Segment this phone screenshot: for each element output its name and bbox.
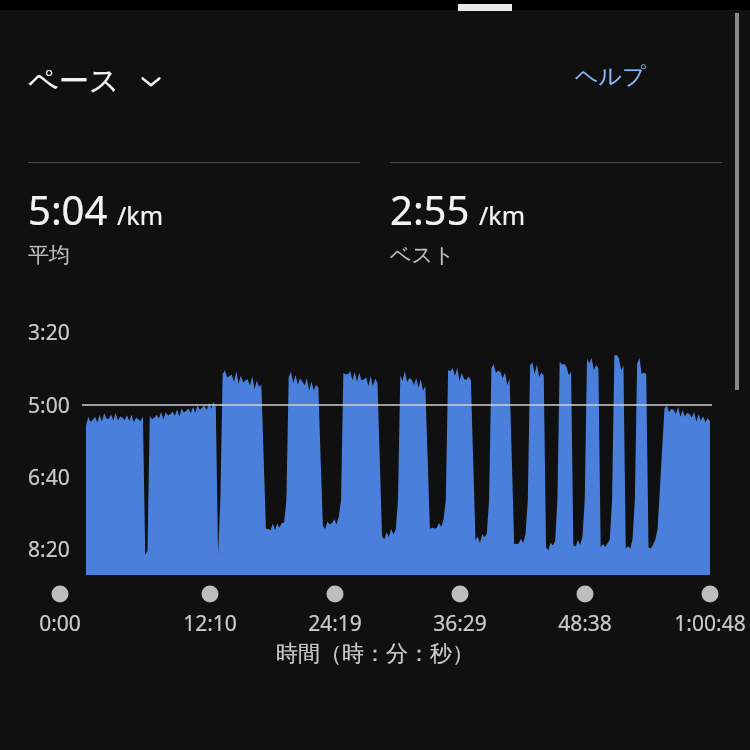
button[interactable]: ヘルプ [573, 62, 648, 91]
staticText: ペース [28, 62, 120, 100]
staticText: 5:04 [28, 182, 108, 236]
staticText: 時間（時：分：秒） [276, 640, 474, 668]
staticText: 平均 [28, 242, 70, 268]
staticText: ベスト [390, 242, 455, 268]
staticText: 12:10 [183, 609, 237, 638]
staticText: 2:55 [390, 182, 470, 236]
staticText: 24:19 [308, 609, 362, 638]
staticText: 36:29 [433, 609, 487, 638]
staticText: 8:20 [28, 535, 70, 563]
button[interactable]: ペース [28, 62, 172, 100]
staticText: 3:20 [28, 318, 70, 346]
staticText: ヘルプ [575, 62, 646, 91]
staticText: 5:00 [28, 391, 70, 419]
staticText: /km [479, 198, 526, 232]
staticText: 6:40 [28, 463, 70, 491]
staticText: /km [117, 198, 164, 232]
staticText: 1:00:48 [674, 609, 746, 638]
staticText: 0:00 [39, 609, 81, 638]
staticText: 48:38 [558, 609, 612, 638]
